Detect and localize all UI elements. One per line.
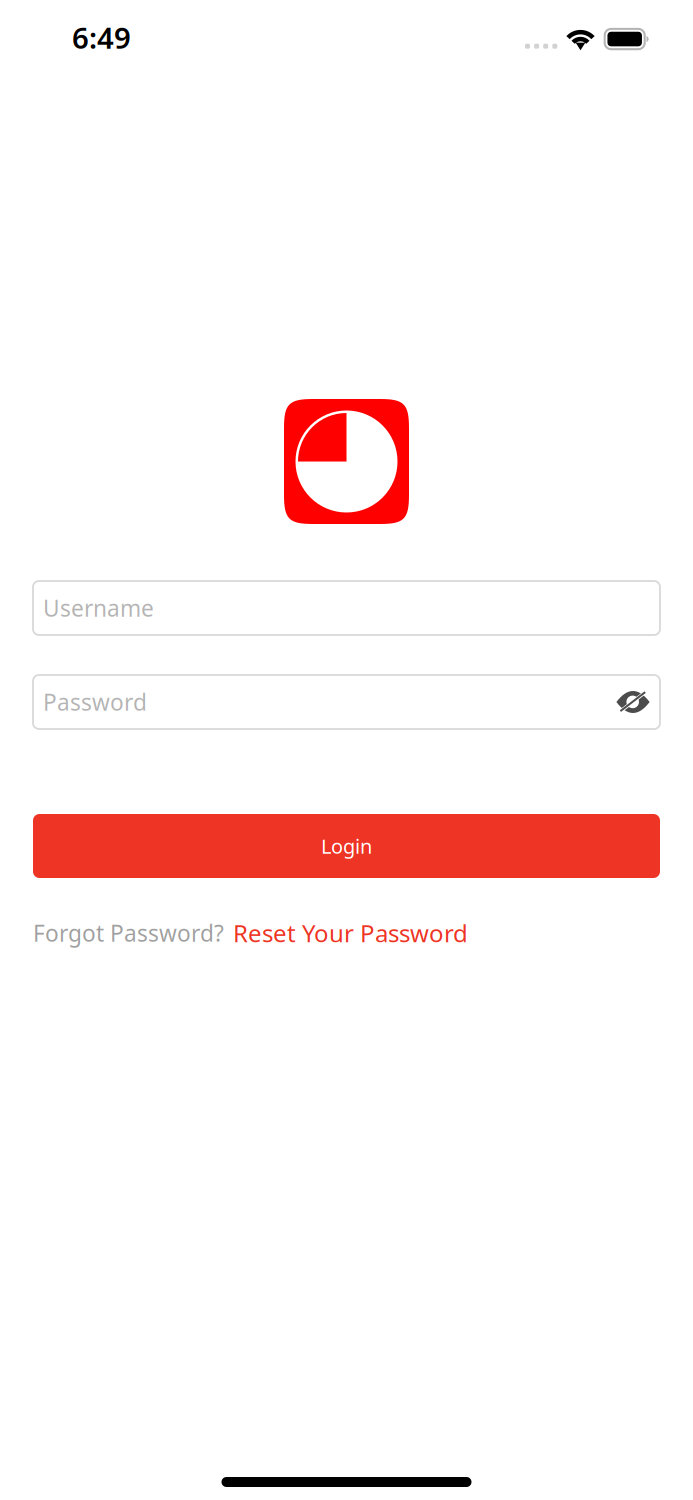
textField[interactable]: Username xyxy=(33,581,660,635)
staticText: Username xyxy=(43,593,154,623)
staticText: 6:49 xyxy=(72,18,131,57)
button[interactable]: Show password xyxy=(611,680,655,724)
staticText: Forgot Password? xyxy=(33,918,224,948)
staticText: Password xyxy=(43,687,147,717)
button[interactable]: Reset Your Password xyxy=(233,917,468,949)
staticText: Reset Your Password xyxy=(233,917,468,949)
secureTextField[interactable]: Password xyxy=(33,675,660,729)
staticText: Login xyxy=(321,833,372,859)
button[interactable]: Login xyxy=(33,814,660,878)
